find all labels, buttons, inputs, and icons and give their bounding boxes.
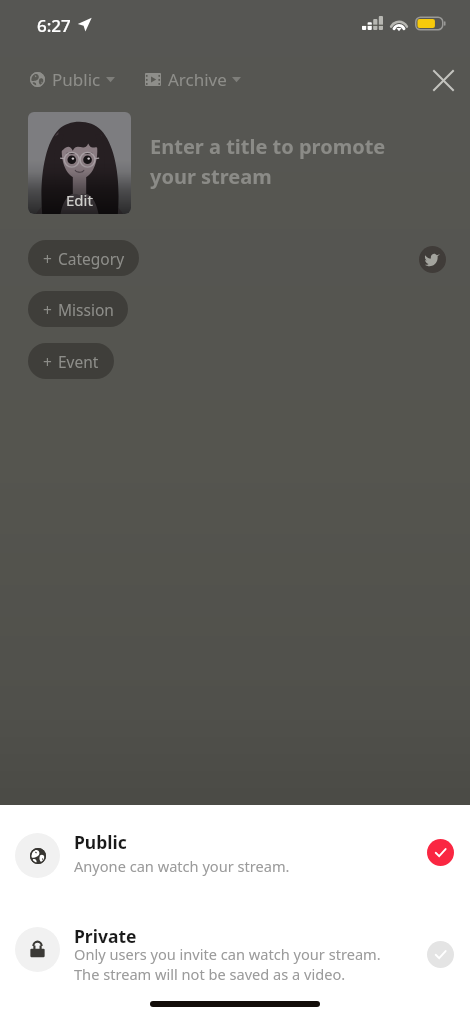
button[interactable]: Public: [0, 833, 470, 878]
staticText: Only users you invite can watch your str…: [74, 944, 381, 964]
button[interactable]: Share to Twitter: [419, 246, 446, 273]
staticText: Anyone can watch your stream.: [74, 856, 290, 876]
staticText: Public: [52, 68, 101, 91]
staticText: +: [43, 248, 52, 269]
staticText: The stream will not be saved as a video.: [74, 964, 346, 984]
staticText: Category: [58, 248, 125, 269]
other: Selected: [427, 839, 454, 866]
staticText: +: [43, 299, 52, 320]
button[interactable]: Archive: [143, 62, 243, 97]
button[interactable]: +: [28, 291, 128, 327]
staticText: 6:27: [37, 14, 71, 37]
button[interactable]: Public: [28, 62, 117, 97]
other: Not selected: [427, 941, 454, 968]
staticText: Private: [74, 924, 137, 948]
button[interactable]: +: [28, 343, 114, 379]
button[interactable]: +: [28, 240, 139, 276]
button[interactable]: Enter a title to promote your stream: [150, 133, 435, 190]
staticText: Mission: [58, 299, 114, 320]
staticText: Public: [74, 830, 127, 854]
staticText: Archive: [168, 68, 227, 91]
staticText: Edit: [66, 190, 93, 210]
button[interactable]: Close: [421, 58, 465, 102]
button[interactable]: Private: [0, 927, 470, 991]
button[interactable]: Edit thumbnail: [28, 112, 131, 214]
staticText: Enter a title to promote your stream: [150, 133, 386, 190]
staticText: +: [43, 351, 52, 372]
staticText: Event: [58, 351, 99, 372]
